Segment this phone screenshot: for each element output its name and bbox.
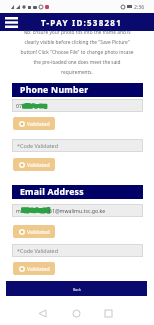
button[interactable]: Home <box>66 303 86 323</box>
button[interactable]: Back <box>6 281 147 298</box>
button[interactable]: Recents <box>98 303 118 323</box>
staticText: Back <box>73 287 81 292</box>
staticText: 2:36 <box>134 3 145 10</box>
staticText: m <box>16 207 21 214</box>
staticText: Validated <box>27 265 50 272</box>
staticText: Email Address <box>20 186 84 198</box>
staticText: T-PAY ID:538281 <box>41 17 122 28</box>
staticText: Validated <box>27 228 50 235</box>
staticText: 61@mwalimu.tsc.go.ke <box>49 207 106 214</box>
staticText: *Code Validated <box>17 142 58 149</box>
staticText: NB: Ensure your photo fits into the fram… <box>18 29 136 75</box>
button[interactable]: Validated <box>13 117 55 130</box>
staticText: Phone Number <box>20 84 89 96</box>
staticText: *Code Validated <box>17 247 58 254</box>
button[interactable]: Validated <box>13 158 55 171</box>
button[interactable]: Back <box>32 303 52 323</box>
button[interactable]: Validated <box>13 262 55 275</box>
staticText: 07 <box>16 102 22 109</box>
staticText: Validated <box>27 161 50 168</box>
staticText: Validated <box>27 120 50 127</box>
button[interactable]: Validated <box>13 225 55 238</box>
button[interactable]: Menu <box>2 14 20 30</box>
